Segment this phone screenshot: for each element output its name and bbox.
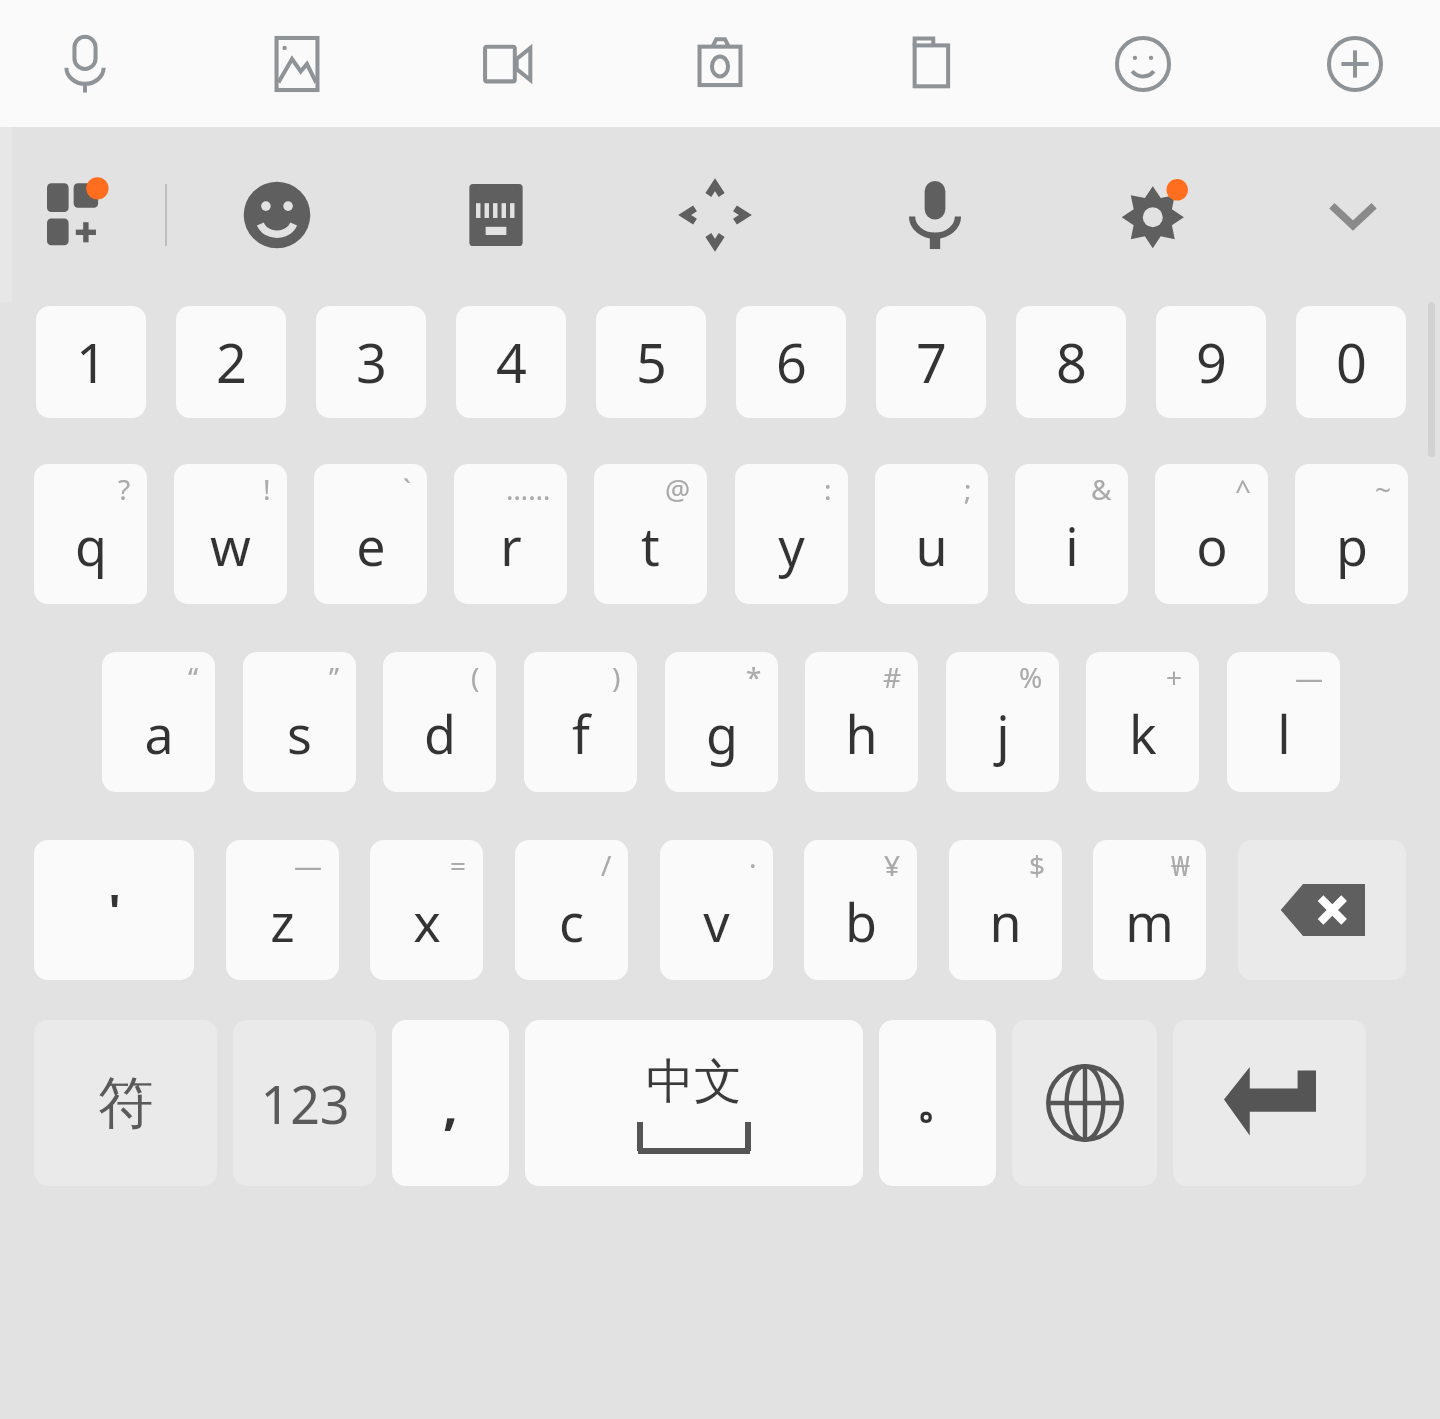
button[interactable]: h bbox=[805, 652, 918, 792]
staticText: ? bbox=[118, 470, 131, 508]
button[interactable]: 5 bbox=[596, 306, 706, 418]
button[interactable]: More bbox=[1300, 9, 1410, 119]
staticText: o bbox=[1196, 510, 1228, 581]
button[interactable]: Hide keyboard bbox=[1265, 127, 1440, 302]
button[interactable]: z bbox=[226, 840, 339, 980]
button[interactable]: 4 bbox=[456, 306, 566, 418]
staticText: i bbox=[1065, 510, 1079, 581]
staticText: 1 bbox=[76, 325, 107, 399]
staticText: ` bbox=[403, 470, 411, 508]
staticText: ( bbox=[471, 658, 480, 696]
button[interactable]: Gallery bbox=[242, 9, 352, 119]
staticText: 123 bbox=[260, 1068, 350, 1139]
button[interactable]: Files bbox=[877, 9, 987, 119]
staticText: g bbox=[706, 698, 738, 769]
button[interactable]: 6 bbox=[736, 306, 846, 418]
staticText: ! bbox=[263, 470, 271, 508]
staticText: …… bbox=[506, 470, 551, 508]
staticText: 7 bbox=[916, 325, 947, 399]
button[interactable]: u bbox=[875, 464, 988, 604]
staticText: $ bbox=[1029, 846, 1046, 884]
button[interactable]: l bbox=[1227, 652, 1340, 792]
staticText: x bbox=[413, 886, 441, 957]
button[interactable]: x bbox=[370, 840, 483, 980]
staticText: + bbox=[1166, 658, 1183, 696]
staticText: — bbox=[1295, 658, 1324, 696]
staticText: ” bbox=[329, 658, 340, 696]
button[interactable]: Emoji bbox=[1088, 9, 1198, 119]
staticText: % bbox=[1019, 658, 1043, 696]
staticText: u bbox=[915, 510, 948, 581]
staticText: ^ bbox=[1235, 470, 1252, 508]
button[interactable]: f bbox=[524, 652, 637, 792]
button[interactable]: Voice message bbox=[30, 9, 140, 119]
button[interactable]: b bbox=[804, 840, 917, 980]
button[interactable]: n bbox=[949, 840, 1062, 980]
button[interactable]: 0 bbox=[1296, 306, 1406, 418]
button[interactable]: s bbox=[243, 652, 356, 792]
button[interactable]: Enter bbox=[1173, 1020, 1366, 1186]
staticText: # bbox=[883, 658, 902, 696]
button[interactable]: Move cursor bbox=[605, 127, 825, 302]
button[interactable]: i bbox=[1015, 464, 1128, 604]
button[interactable]: Camera bbox=[665, 9, 775, 119]
staticText: q bbox=[75, 510, 107, 581]
staticText: 8 bbox=[1056, 325, 1087, 399]
staticText: ~ bbox=[1375, 470, 1392, 508]
button[interactable]: p bbox=[1295, 464, 1408, 604]
button[interactable]: e bbox=[314, 464, 427, 604]
button[interactable]: m bbox=[1093, 840, 1206, 980]
button[interactable]: 2 bbox=[176, 306, 286, 418]
button[interactable]: k bbox=[1086, 652, 1199, 792]
button[interactable]: r bbox=[454, 464, 567, 604]
staticText: w bbox=[210, 510, 251, 581]
staticText: j bbox=[996, 698, 1010, 769]
button[interactable]: 7 bbox=[876, 306, 986, 418]
button[interactable]: v bbox=[660, 840, 773, 980]
button[interactable]: Add shortcut bbox=[0, 127, 165, 302]
button[interactable]: o bbox=[1155, 464, 1268, 604]
staticText: t bbox=[641, 510, 660, 581]
staticText: p bbox=[1336, 510, 1368, 581]
button[interactable]: , bbox=[392, 1020, 509, 1186]
button[interactable]: c bbox=[515, 840, 628, 980]
staticText: c bbox=[559, 886, 584, 957]
button[interactable]: 符 bbox=[34, 1020, 217, 1186]
staticText: ¥ bbox=[884, 846, 901, 884]
button[interactable]: g bbox=[665, 652, 778, 792]
button[interactable]: Backspace bbox=[1238, 840, 1406, 980]
button[interactable]: a bbox=[102, 652, 215, 792]
button[interactable]: Space 中文 bbox=[525, 1020, 863, 1186]
button[interactable]: 123 bbox=[233, 1020, 376, 1186]
button[interactable]: Voice input bbox=[825, 127, 1045, 302]
staticText: — bbox=[294, 846, 323, 884]
button[interactable]: 1 bbox=[36, 306, 146, 418]
button[interactable]: ' bbox=[34, 840, 194, 980]
staticText: z bbox=[270, 886, 295, 957]
staticText: m bbox=[1125, 886, 1174, 957]
staticText: 3 bbox=[356, 325, 387, 399]
button[interactable]: q bbox=[34, 464, 147, 604]
button[interactable]: j bbox=[946, 652, 1059, 792]
staticText: h bbox=[845, 698, 878, 769]
button[interactable]: Emoji bbox=[167, 127, 386, 302]
button[interactable]: Keyboard layout bbox=[386, 127, 605, 302]
staticText: 4 bbox=[496, 325, 527, 399]
staticText: @ bbox=[665, 470, 691, 508]
staticText: * bbox=[746, 658, 762, 696]
button[interactable]: 。 bbox=[879, 1020, 996, 1186]
staticText: & bbox=[1091, 470, 1112, 508]
staticText: ₩ bbox=[1171, 846, 1190, 884]
button[interactable]: Settings bbox=[1045, 127, 1265, 302]
button[interactable]: w bbox=[174, 464, 287, 604]
button[interactable]: 3 bbox=[316, 306, 426, 418]
staticText: n bbox=[989, 886, 1022, 957]
button[interactable]: 8 bbox=[1016, 306, 1126, 418]
button[interactable]: Video bbox=[453, 9, 563, 119]
button[interactable]: 9 bbox=[1156, 306, 1266, 418]
staticText: e bbox=[356, 510, 386, 581]
button[interactable]: y bbox=[735, 464, 848, 604]
button[interactable]: t bbox=[594, 464, 707, 604]
button[interactable]: d bbox=[383, 652, 496, 792]
button[interactable]: Switch language bbox=[1012, 1020, 1157, 1186]
